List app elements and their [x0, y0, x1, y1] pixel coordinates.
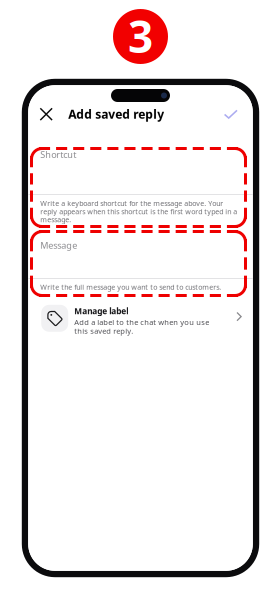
button[interactable]: Manage label [28, 298, 253, 344]
staticText: Write the full message you want to send … [40, 282, 221, 292]
staticText: Manage label [74, 305, 128, 317]
staticText: Write a keyboard shortcut for the messag… [40, 198, 237, 224]
staticText: Add a label to the chat when you use thi… [74, 317, 209, 336]
button[interactable]: Save [218, 101, 244, 127]
staticText: Shortcut [40, 148, 76, 160]
staticText: 3 [128, 6, 153, 66]
staticText: Message [40, 239, 77, 251]
button[interactable]: Close [33, 101, 59, 127]
staticText: Add saved reply [68, 106, 164, 122]
